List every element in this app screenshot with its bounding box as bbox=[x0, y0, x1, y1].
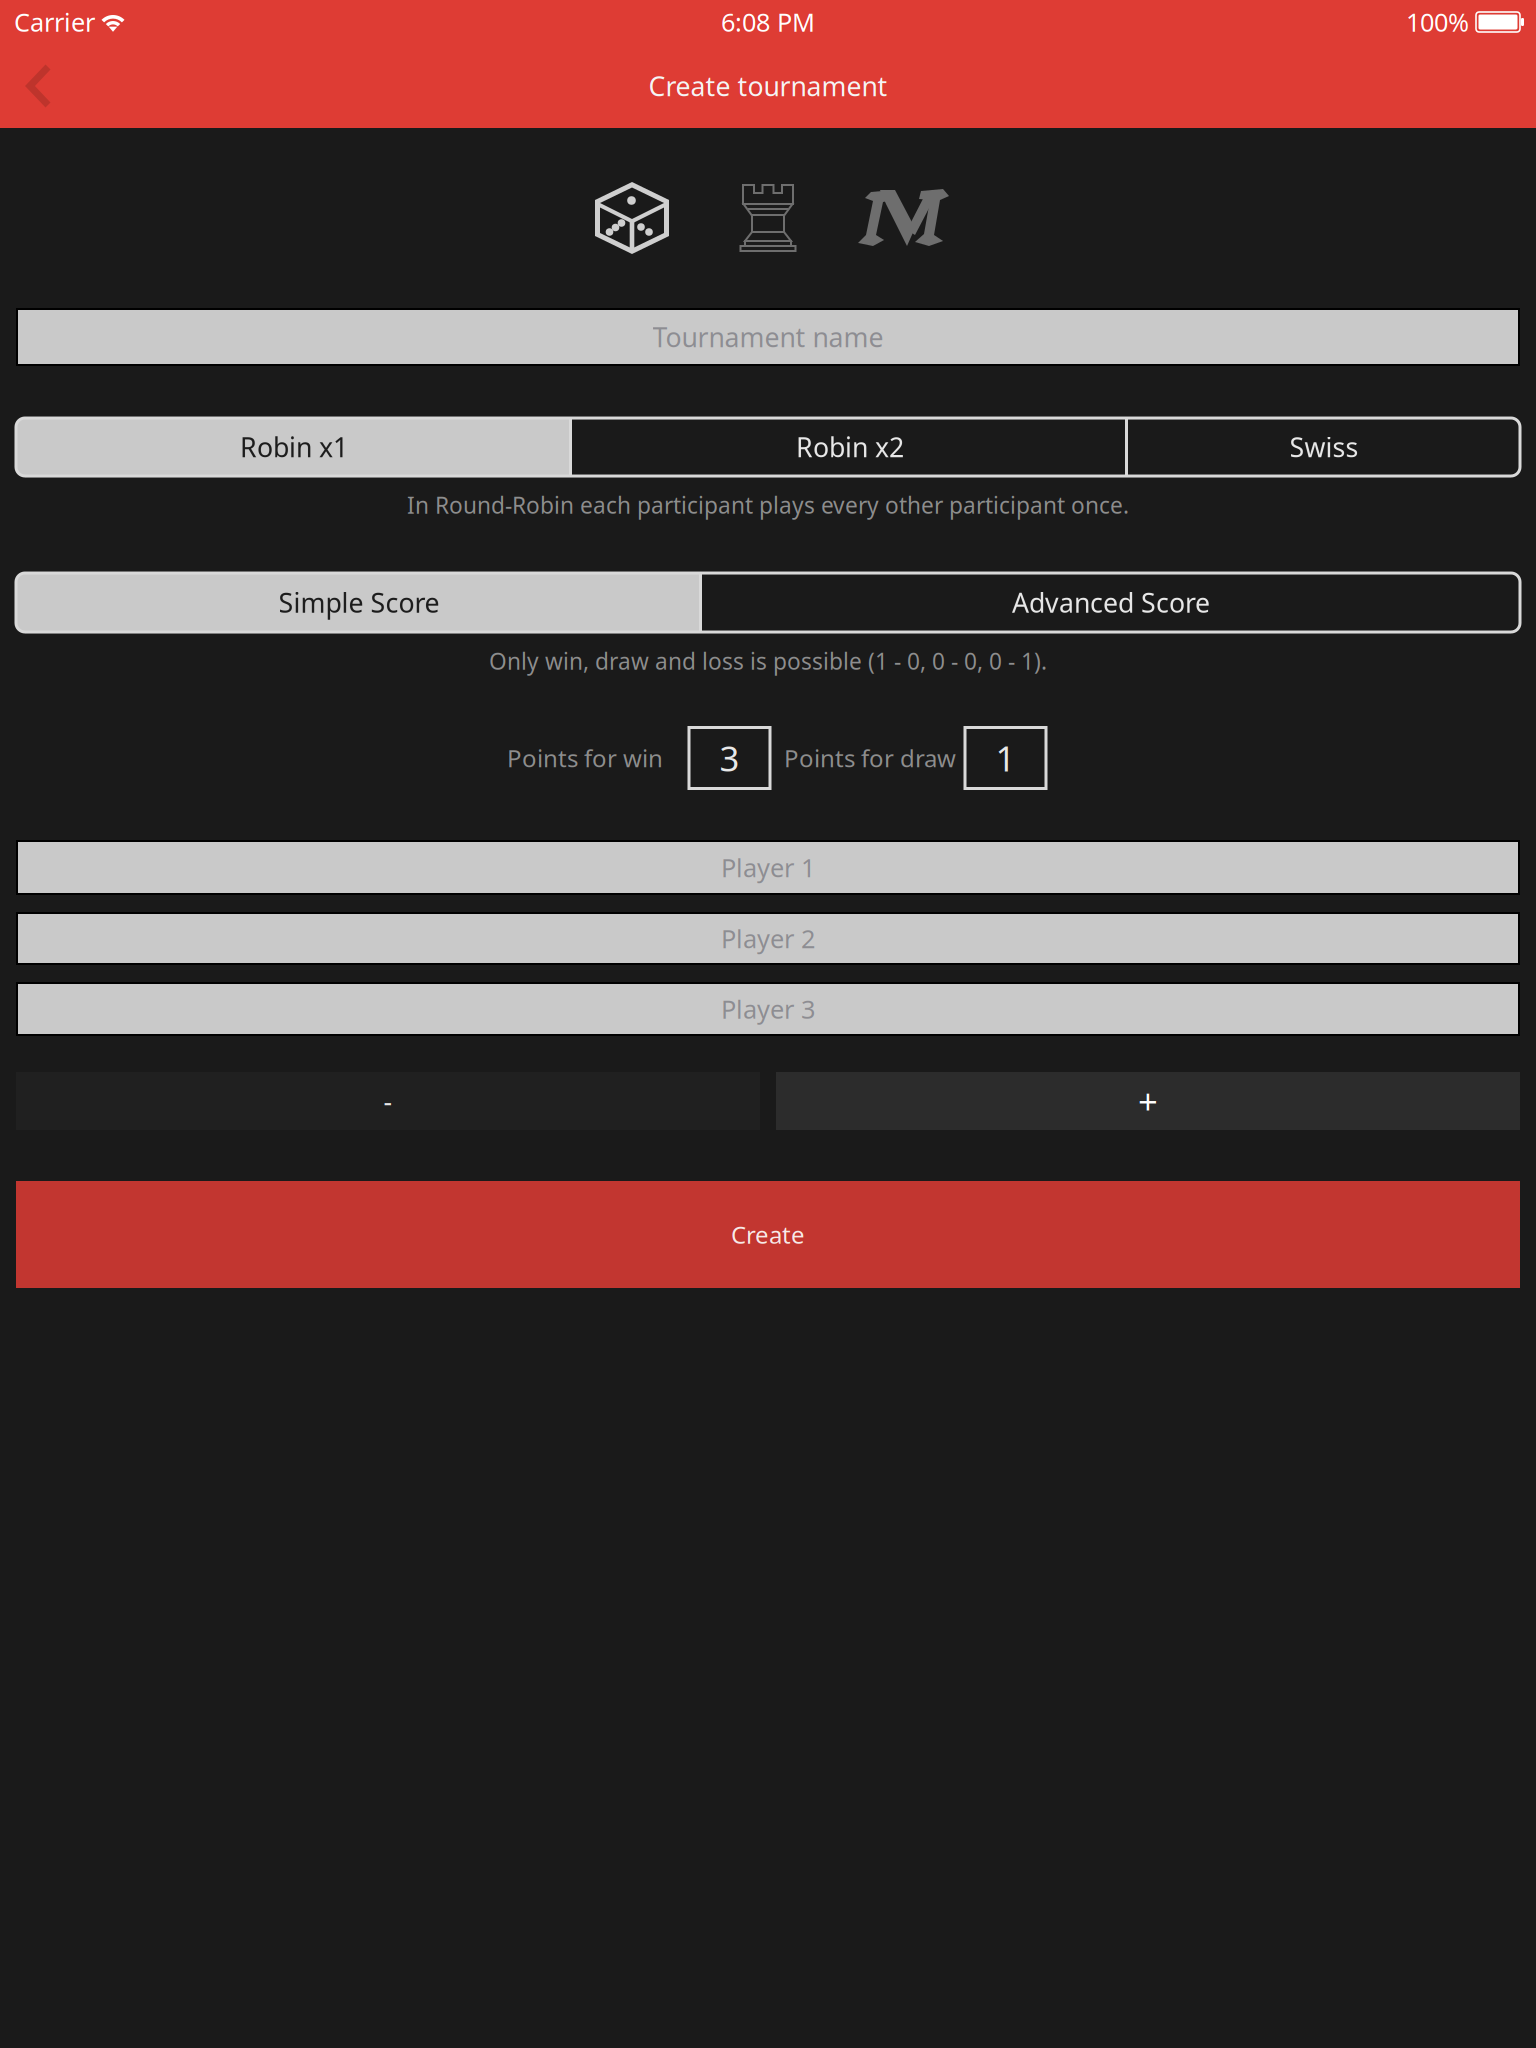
button[interactable]: Player 3 bbox=[16, 982, 1520, 1036]
staticText: Robin x1 bbox=[240, 429, 348, 465]
staticText: Player 3 bbox=[721, 992, 815, 1026]
staticText: Swiss bbox=[1289, 429, 1358, 465]
staticText: 3 bbox=[719, 735, 739, 781]
button[interactable]: + bbox=[776, 1072, 1520, 1130]
staticText: Player 1 bbox=[721, 851, 815, 884]
button[interactable]: Create bbox=[16, 1181, 1520, 1288]
button[interactable]: - bbox=[16, 1072, 760, 1130]
button[interactable]: Swiss bbox=[1128, 418, 1520, 476]
staticText: Advanced Score bbox=[1012, 585, 1210, 620]
staticText: Tournament name bbox=[652, 319, 883, 355]
staticText: 100% bbox=[1406, 5, 1469, 39]
button[interactable]: Advanced Score bbox=[702, 573, 1520, 632]
button[interactable]: Robin x2 bbox=[572, 418, 1128, 476]
button[interactable]: Simple Score bbox=[16, 573, 702, 632]
staticText: Player 2 bbox=[721, 922, 815, 955]
staticText: 6:08 PM bbox=[721, 5, 815, 39]
staticText: - bbox=[383, 1083, 392, 1119]
button[interactable]: Back bbox=[0, 44, 76, 128]
staticText: Create tournament bbox=[648, 68, 887, 104]
staticText: Only win, draw and loss is possible (1 -… bbox=[489, 646, 1047, 676]
button[interactable]: Robin x1 bbox=[16, 418, 572, 476]
staticText: Create bbox=[731, 1219, 805, 1250]
button[interactable]: Other games bbox=[844, 178, 962, 258]
button[interactable]: Player 1 bbox=[16, 840, 1520, 895]
staticText: Robin x2 bbox=[796, 429, 904, 465]
button[interactable]: Tournament name bbox=[16, 308, 1520, 366]
staticText: In Round-Robin each participant plays ev… bbox=[407, 490, 1129, 520]
staticText: Simple Score bbox=[278, 585, 439, 620]
staticText: + bbox=[1138, 1078, 1158, 1124]
staticText: 1 bbox=[995, 735, 1015, 781]
button[interactable]: 1 bbox=[965, 727, 1046, 788]
staticText: Points for draw bbox=[784, 742, 956, 774]
staticText: Points for win bbox=[507, 742, 663, 774]
staticText: Carrier bbox=[14, 5, 95, 39]
button[interactable]: Chess games bbox=[709, 178, 827, 258]
button[interactable]: Player 2 bbox=[16, 912, 1520, 965]
button[interactable]: Dice games bbox=[573, 178, 691, 258]
button[interactable]: 3 bbox=[689, 727, 770, 788]
